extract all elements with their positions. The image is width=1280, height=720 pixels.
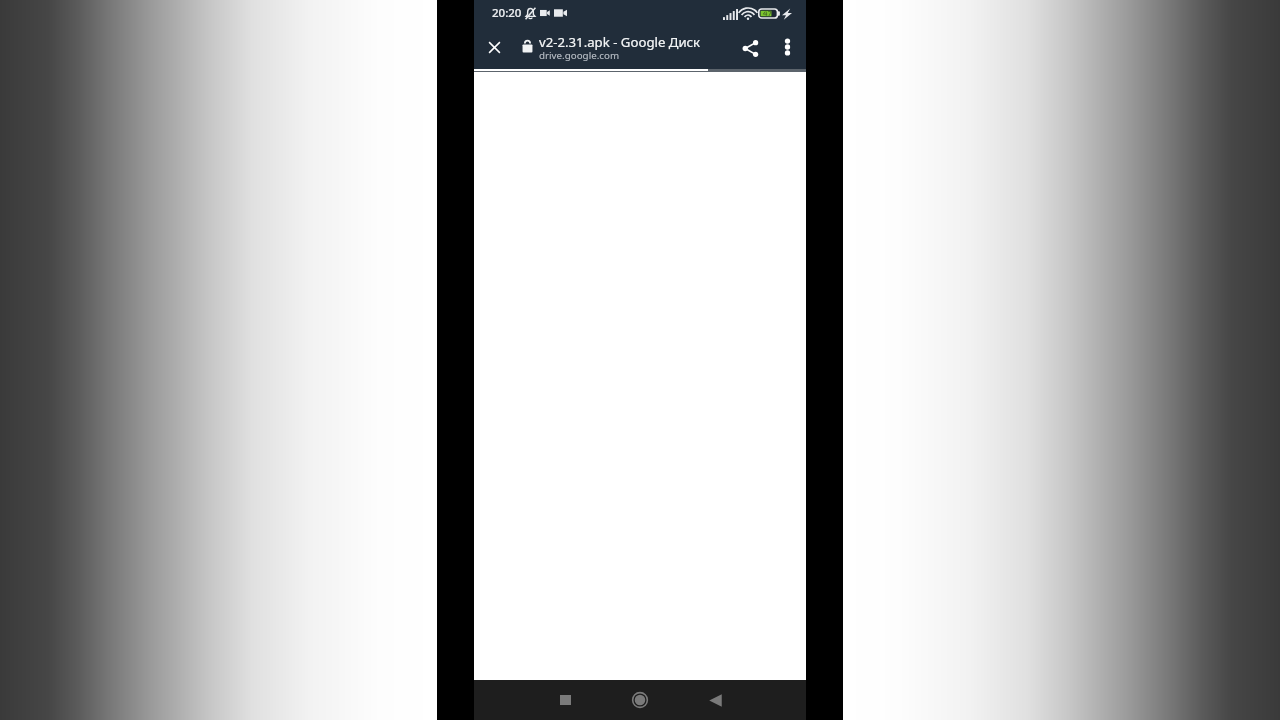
staticText: 20:20 — [492, 5, 522, 21]
staticText: v2-2.31.apk - Google Диск — [539, 33, 701, 51]
button[interactable]: Close — [477, 30, 512, 65]
button[interactable]: Home — [623, 683, 657, 717]
staticText: drive.google.com — [539, 49, 620, 62]
button[interactable]: Share — [731, 29, 769, 67]
button[interactable]: More options — [770, 29, 804, 63]
button[interactable]: Back — [698, 683, 732, 717]
button[interactable]: Recent apps — [548, 683, 582, 717]
